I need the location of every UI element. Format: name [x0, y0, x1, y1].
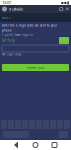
staticText: Get help [2, 39, 15, 42]
staticText: We never share [2, 53, 22, 56]
staticText: 12:07 [2, 0, 11, 5]
staticText: 1 point, faster sign in [2, 33, 33, 37]
button[interactable]: Home [33, 142, 38, 147]
button[interactable]: Recent apps [52, 142, 57, 147]
staticText: SUBMIT CODE [27, 66, 44, 69]
button[interactable]: Back [14, 141, 19, 148]
button[interactable]: Close [65, 6, 69, 12]
staticText: ▪▪▮ [61, 0, 69, 5]
staticText: Step 2 [2, 16, 11, 19]
staticText: Enter the 6 digit code we sent to your [2, 24, 57, 27]
button[interactable]: Reload [59, 7, 63, 11]
staticText: phone [2, 29, 12, 32]
button[interactable]: SUBMIT CODE [2, 64, 69, 71]
staticText: truthaile [9, 6, 23, 12]
staticText: ✕ [65, 6, 69, 12]
